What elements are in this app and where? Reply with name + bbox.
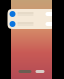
button[interactable]	[7, 19, 55, 29]
button[interactable]	[18, 70, 31, 73]
button[interactable]	[7, 9, 55, 19]
button[interactable]	[35, 70, 44, 73]
